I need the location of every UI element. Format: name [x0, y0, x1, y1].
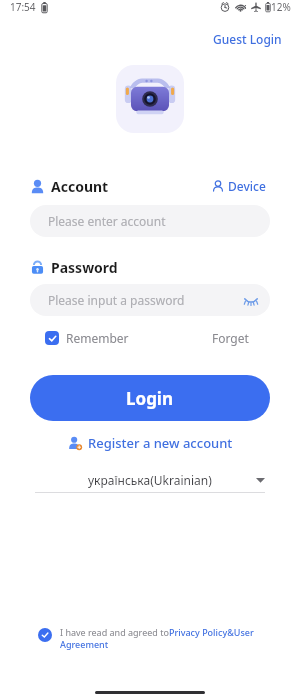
button[interactable]: Please enter account	[30, 205, 270, 237]
staticText: Password	[51, 258, 118, 277]
button[interactable]: Remember	[45, 326, 129, 350]
button[interactable]: Device	[208, 174, 270, 198]
staticText: Forget	[212, 330, 249, 346]
staticText: Account	[51, 177, 109, 196]
button[interactable]: Show password	[244, 296, 270, 305]
staticText: Remember	[66, 330, 129, 346]
staticText: I have read and agreed to	[60, 626, 169, 638]
button[interactable]: I have read and agreed to	[38, 626, 270, 650]
staticText: Please enter account	[48, 213, 166, 229]
button[interactable]: українська(Ukrainian)	[35, 468, 265, 492]
staticText: 12%	[271, 0, 291, 14]
staticText: Login	[126, 387, 174, 410]
button[interactable]: Guest Login	[195, 25, 300, 53]
staticText: Privacy Policy&User	[169, 626, 254, 638]
staticText: Register a new account	[88, 434, 233, 452]
staticText: українська(Ukrainian)	[88, 472, 212, 488]
staticText: Agreement	[60, 638, 109, 650]
button[interactable]: Forget	[206, 326, 255, 350]
button[interactable]: Please input a password	[30, 284, 270, 316]
button[interactable]: Login	[30, 375, 270, 421]
staticText: 17:54	[10, 0, 36, 14]
staticText: Device	[228, 178, 266, 194]
staticText: Guest Login	[213, 31, 282, 47]
button[interactable]: Register a new account	[60, 430, 241, 456]
staticText: Please input a password	[48, 292, 185, 308]
